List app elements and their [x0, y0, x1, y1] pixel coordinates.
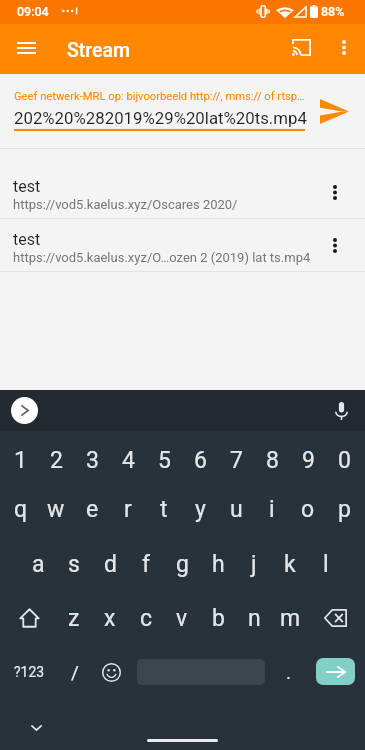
button[interactable]: Show suggestions	[11, 397, 38, 424]
button[interactable]: b	[200, 591, 236, 645]
button[interactable]: u	[218, 482, 254, 536]
staticText: .	[286, 661, 292, 683]
staticText: 6	[194, 447, 207, 474]
button[interactable]: 0	[326, 433, 362, 487]
button[interactable]: 5	[146, 433, 182, 487]
staticText: 8	[266, 447, 279, 474]
button[interactable]: t	[146, 482, 182, 536]
button[interactable]: j	[236, 537, 272, 591]
staticText: c	[140, 605, 153, 632]
staticText: 3	[86, 447, 99, 474]
staticText: d	[104, 551, 117, 578]
staticText: Stream	[67, 39, 130, 62]
staticText: l	[323, 551, 329, 578]
staticText: https://vod5.kaelus.xyz/Oscares 2020/	[13, 197, 333, 212]
staticText: o	[301, 496, 315, 523]
staticText: 5	[158, 447, 171, 474]
staticText: y	[195, 496, 206, 523]
button[interactable]: 6	[182, 433, 218, 487]
staticText: q	[14, 496, 28, 523]
button[interactable]: i	[254, 482, 290, 536]
button[interactable]: y	[182, 482, 218, 536]
button[interactable]: x	[92, 591, 128, 645]
staticText: b	[212, 605, 225, 632]
button[interactable]: a	[21, 537, 56, 591]
button[interactable]: 2	[38, 433, 74, 487]
staticText: ?123	[14, 664, 45, 680]
staticText: e	[86, 496, 99, 523]
button[interactable]: o	[290, 482, 326, 536]
button[interactable]: z	[56, 591, 92, 645]
staticText: /	[71, 661, 79, 683]
staticText: 7	[230, 447, 243, 474]
button[interactable]: r	[110, 482, 146, 536]
staticText: 2	[50, 447, 63, 474]
staticText: 4	[122, 447, 135, 474]
button[interactable]: e	[74, 482, 110, 536]
staticText: w	[47, 496, 65, 523]
button[interactable]: m	[272, 591, 308, 645]
staticText: 202%20%282019%29%20lat%20ts.mp4	[14, 108, 307, 128]
button[interactable]: 4	[110, 433, 146, 487]
button[interactable]: Item options	[322, 179, 348, 205]
button[interactable]: v	[164, 591, 200, 645]
staticText: 09:04	[17, 4, 49, 19]
staticText: 9	[302, 447, 315, 474]
staticText: p	[338, 496, 351, 523]
button[interactable]: Voice input	[325, 395, 357, 427]
button[interactable]: 9	[290, 433, 326, 487]
button[interactable]: Item options	[322, 232, 348, 258]
button[interactable]: Emoji	[93, 645, 129, 699]
button[interactable]: Hide keyboard	[23, 715, 49, 741]
button[interactable]: f	[128, 537, 164, 591]
staticText: g	[176, 551, 189, 578]
button[interactable]: Shift	[3, 591, 56, 645]
button[interactable]: Backspace	[308, 591, 362, 645]
button[interactable]: test	[0, 166, 365, 218]
button[interactable]: Navigation menu	[8, 29, 45, 66]
button[interactable]: Cast	[282, 28, 320, 66]
button[interactable]: g	[164, 537, 200, 591]
button[interactable]: Enter	[316, 658, 355, 685]
button[interactable]: d	[92, 537, 128, 591]
button[interactable]: k	[272, 537, 308, 591]
staticText: u	[230, 496, 243, 523]
button[interactable]: h	[200, 537, 236, 591]
staticText: s	[68, 551, 80, 578]
staticText: https://vod5.kaelus.xyz/O…ozen 2 (2019) …	[13, 250, 333, 265]
button[interactable]: c	[128, 591, 164, 645]
staticText: test	[13, 230, 41, 249]
button[interactable]: .	[272, 645, 306, 699]
button[interactable]: ?123	[8, 645, 51, 699]
staticText: 1	[14, 447, 27, 474]
staticText: x	[104, 605, 116, 632]
button[interactable]: test	[0, 219, 365, 271]
button[interactable]: More options	[327, 30, 361, 64]
button[interactable]: n	[236, 591, 272, 645]
button[interactable]: 8	[254, 433, 290, 487]
button[interactable]: Play stream	[310, 90, 356, 132]
staticText: Geef netwerk-MRL op: bijvoorbeeld http:/…	[14, 90, 324, 103]
button[interactable]: s	[56, 537, 92, 591]
button[interactable]: 1	[3, 433, 38, 487]
staticText: test	[13, 177, 41, 196]
button[interactable]: /	[57, 645, 93, 699]
button[interactable]: l	[308, 537, 344, 591]
staticText: 88%	[321, 4, 345, 19]
button[interactable]: p	[326, 482, 362, 536]
staticText: a	[32, 551, 45, 578]
staticText: t	[160, 496, 168, 523]
staticText: z	[68, 605, 80, 632]
staticText: 0	[338, 447, 351, 474]
button[interactable]: 7	[218, 433, 254, 487]
staticText: k	[284, 551, 296, 578]
staticText: f	[142, 551, 150, 578]
staticText: n	[248, 605, 261, 632]
button[interactable]: 3	[74, 433, 110, 487]
staticText: r	[124, 496, 132, 523]
staticText: j	[251, 551, 257, 578]
staticText: v	[176, 605, 188, 632]
button[interactable]: q	[3, 482, 38, 536]
button[interactable]: w	[38, 482, 74, 536]
